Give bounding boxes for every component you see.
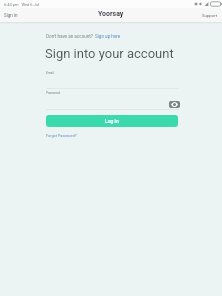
button[interactable]: Log in (46, 115, 178, 127)
staticText: Sign in (4, 13, 18, 18)
staticText: Don't have an account? (46, 34, 95, 39)
staticText: Forgot Password? (46, 133, 77, 137)
button[interactable]: Forgot Password? (46, 133, 77, 137)
button[interactable]: Sign up here (95, 34, 121, 39)
staticText: Yoorsay (98, 10, 124, 18)
staticText: Sign into your account (45, 46, 174, 61)
button[interactable]: Show password (169, 101, 180, 108)
staticText: 6:44 pm Wed 6 Jul (4, 2, 39, 7)
button[interactable]: Support (198, 10, 222, 21)
staticText: Password (46, 91, 61, 95)
staticText: Sign up here (95, 34, 121, 39)
staticText: Email (46, 71, 54, 75)
staticText: Log in (105, 118, 119, 124)
button[interactable]: Sign in (0, 10, 22, 21)
staticText: Support (202, 13, 218, 18)
